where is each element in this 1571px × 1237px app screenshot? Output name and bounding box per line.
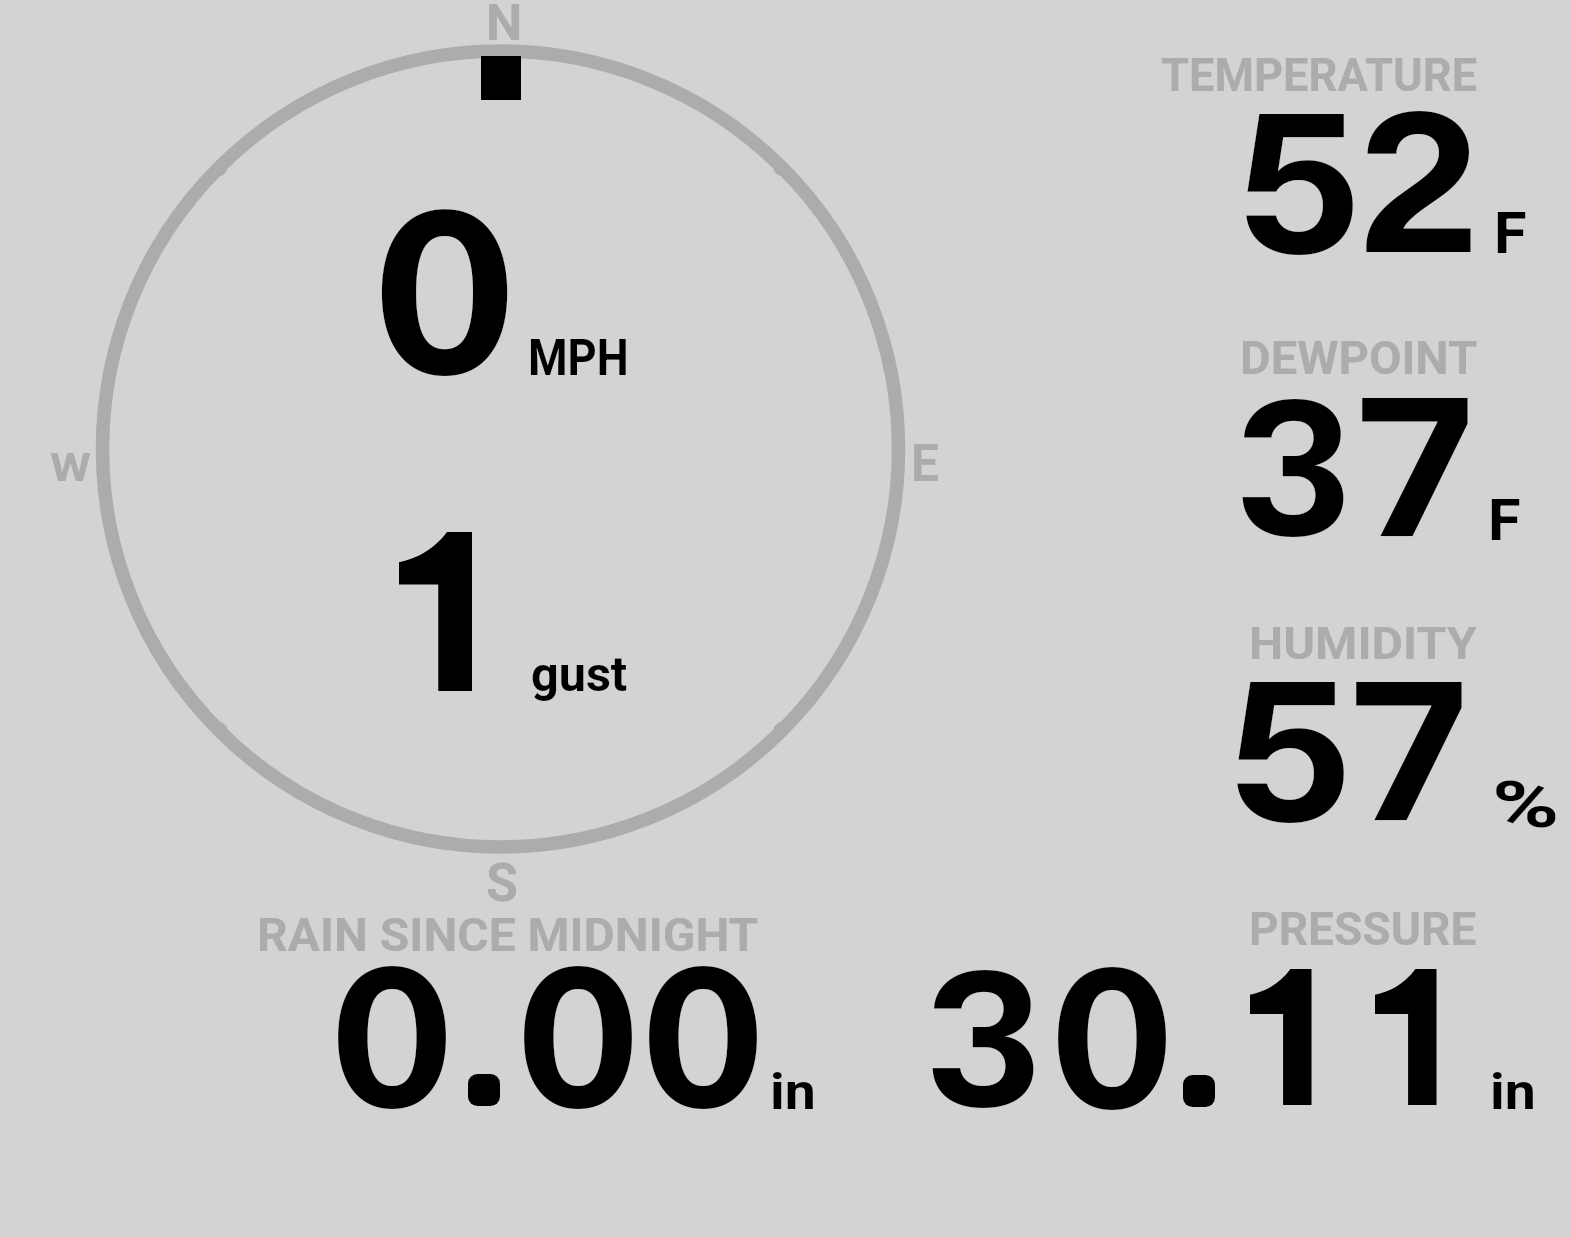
button[interactable]: Pressure 30.11 inches bbox=[900, 895, 1540, 1125]
staticText: 3 bbox=[923, 925, 1044, 1151]
staticText: 5 bbox=[1236, 66, 1363, 296]
button[interactable]: Humidity 57 percent bbox=[1150, 610, 1565, 835]
button[interactable]: Wind gust 1 mile per hour bbox=[360, 500, 650, 715]
staticText: HUMIDITY bbox=[1249, 617, 1477, 670]
staticText: S bbox=[486, 851, 519, 914]
staticText: 7 bbox=[1357, 350, 1473, 575]
staticText: in bbox=[1490, 1063, 1536, 1122]
staticText: 0 bbox=[1047, 921, 1177, 1151]
staticText: 0 bbox=[369, 155, 521, 405]
staticText: F bbox=[1488, 487, 1521, 554]
staticText: 0 bbox=[327, 920, 457, 1145]
staticText: PRESSURE bbox=[1249, 902, 1477, 956]
staticText: F bbox=[1494, 200, 1527, 267]
staticText: 0 bbox=[638, 920, 768, 1145]
button[interactable]: Wind speed 0 miles per hour bbox=[330, 140, 650, 390]
staticText: RAIN SINCE MIDNIGHT bbox=[257, 907, 759, 962]
staticText: % bbox=[1492, 767, 1561, 843]
staticText: 7 bbox=[1351, 634, 1467, 859]
staticText: E bbox=[911, 434, 939, 494]
staticText: 2 bbox=[1356, 66, 1481, 296]
staticText: 5 bbox=[1227, 634, 1354, 859]
staticText: gust bbox=[531, 646, 628, 703]
staticText: TEMPERATURE bbox=[1161, 47, 1477, 102]
staticText: 0 bbox=[513, 920, 643, 1145]
staticText: W bbox=[50, 446, 92, 491]
button[interactable]: Dew point 37 degrees Fahrenheit bbox=[1150, 325, 1550, 550]
staticText: in bbox=[770, 1063, 816, 1122]
staticText: DEWPOINT bbox=[1240, 331, 1478, 385]
button[interactable]: Rain since midnight 0.00 inches bbox=[250, 900, 825, 1125]
button[interactable]: Temperature 52 degrees Fahrenheit bbox=[1150, 40, 1550, 270]
staticText: N bbox=[486, 0, 523, 53]
staticText: MPH bbox=[528, 329, 629, 388]
staticText: 3 bbox=[1233, 354, 1354, 579]
